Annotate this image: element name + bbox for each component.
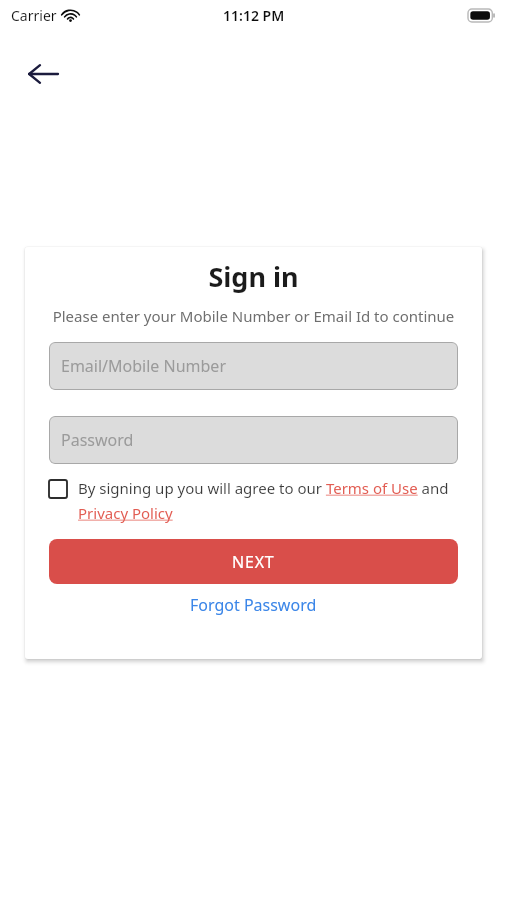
staticText: Password <box>61 429 134 451</box>
staticText: Sign in <box>49 258 458 295</box>
staticText: Carrier <box>11 6 57 25</box>
button[interactable]: Email/Mobile Number <box>49 342 458 390</box>
button[interactable]: Back <box>21 52 65 96</box>
staticText: By signing up you will agree to our Term… <box>78 478 458 523</box>
staticText: NEXT <box>232 551 275 573</box>
button[interactable]: Agree to terms checkbox <box>49 480 67 498</box>
button[interactable]: Forgot Password <box>49 594 458 616</box>
button[interactable]: Password <box>49 416 458 464</box>
button[interactable]: NEXT <box>49 539 458 584</box>
staticText: Email/Mobile Number <box>61 355 226 377</box>
staticText: 11:12 PM <box>223 6 285 25</box>
staticText: Please enter your Mobile Number or Email… <box>49 306 458 326</box>
staticText: Forgot Password <box>190 594 317 616</box>
